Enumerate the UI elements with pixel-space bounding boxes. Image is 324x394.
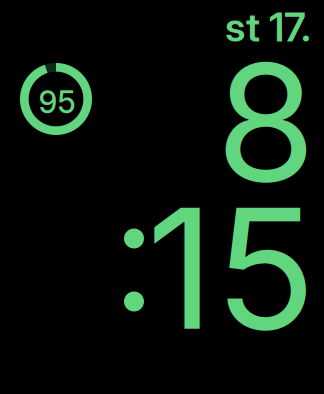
button[interactable]: Activity, 95 percent bbox=[20, 63, 92, 135]
staticText: st 17. bbox=[225, 3, 311, 51]
staticText: 15 bbox=[146, 167, 315, 369]
button[interactable]: st 17. bbox=[225, 3, 311, 51]
staticText: 95 bbox=[38, 83, 75, 120]
staticText: 8 bbox=[216, 24, 316, 220]
